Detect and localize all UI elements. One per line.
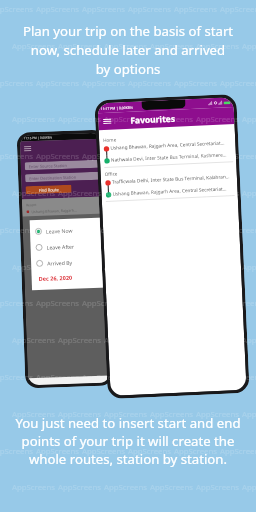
button[interactable]: Find Route xyxy=(25,185,72,194)
staticText: AppScreens xyxy=(82,78,126,89)
staticText: AppScreens xyxy=(128,151,172,162)
button[interactable]: Open navigation menu xyxy=(103,119,111,124)
staticText: AppScreens xyxy=(0,446,34,457)
staticText: AppScreens xyxy=(220,446,256,457)
staticText: Leave After xyxy=(46,243,75,251)
staticText: Enter Destination Station xyxy=(29,174,77,181)
staticText: AppScreens xyxy=(58,41,102,52)
staticText: AppScreens xyxy=(242,409,256,420)
staticText: AppScreens xyxy=(150,41,194,52)
staticText: AppScreens xyxy=(58,409,102,420)
staticText: AppScreens xyxy=(36,446,80,457)
staticText: AppScreens xyxy=(82,151,126,162)
staticText: 11:15 PM | 0.00KB/s xyxy=(24,135,53,140)
staticText: AppScreens xyxy=(220,225,256,236)
staticText: Ushang Bhawan, Rajgarh Area, Central Sec… xyxy=(110,139,224,151)
staticText: AppScreens xyxy=(104,482,148,493)
staticText: AppScreens xyxy=(12,409,56,420)
staticText: AppScreens xyxy=(36,4,80,15)
staticText: Trafficwala Delhi, Inter State Bus Termi… xyxy=(112,173,230,185)
staticText: AppScreens xyxy=(242,188,256,199)
staticText: AppScreens xyxy=(104,114,148,125)
staticText: AppScreens xyxy=(220,151,256,162)
staticText: AppScreens xyxy=(220,298,256,309)
staticText: 11:17 PM | 0.00KB/s xyxy=(101,105,134,111)
staticText: AppScreens xyxy=(12,482,56,493)
staticText: AppScreens xyxy=(82,372,126,383)
staticText: AppScreens xyxy=(0,298,34,309)
button[interactable]: Enter Source Station xyxy=(25,160,99,170)
staticText: AppScreens xyxy=(0,151,34,162)
staticText: Favourites xyxy=(130,113,175,127)
staticText: Recent xyxy=(26,203,37,207)
staticText: AppScreens xyxy=(242,335,256,346)
staticText: AppScreens xyxy=(196,41,240,52)
staticText: AppScreens xyxy=(196,114,240,125)
staticText: AppScreens xyxy=(58,262,102,273)
staticText: AppScreens xyxy=(128,446,172,457)
staticText: AppScreens xyxy=(174,78,218,89)
staticText: AppScreens xyxy=(58,114,102,125)
staticText: Dec 26, 2020 xyxy=(38,274,73,282)
staticText: AppScreens xyxy=(82,4,126,15)
staticText: AppScreens xyxy=(104,262,148,273)
staticText: AppScreens xyxy=(12,41,56,52)
staticText: AppScreens xyxy=(242,114,256,125)
staticText: AppScreens xyxy=(12,262,56,273)
staticText: AppScreens xyxy=(220,78,256,89)
staticText: AppScreens xyxy=(150,114,194,125)
staticText: AppScreens xyxy=(12,188,56,199)
button[interactable]: Arrived By xyxy=(36,258,106,267)
staticText: AppScreens xyxy=(196,409,240,420)
staticText: AppScreens xyxy=(242,262,256,273)
staticText: AppScreens xyxy=(36,151,80,162)
staticText: AppScreens xyxy=(128,78,172,89)
button[interactable]: Enter Destination Station xyxy=(25,172,99,182)
staticText: AppScreens xyxy=(36,78,80,89)
staticText: AppScreens xyxy=(128,4,172,15)
staticText: AppScreens xyxy=(36,372,80,383)
staticText: AppScreens xyxy=(0,225,34,236)
staticText: AppScreens xyxy=(58,335,102,346)
button[interactable]: Home xyxy=(99,128,236,168)
staticText: AppScreens xyxy=(174,446,218,457)
staticText: AppScreens xyxy=(104,409,148,420)
staticText: AppScreens xyxy=(150,482,194,493)
staticText: AppScreens xyxy=(58,188,102,199)
staticText: AppScreens xyxy=(150,409,194,420)
button[interactable]: Open navigation menu xyxy=(24,146,31,151)
staticText: AppScreens xyxy=(104,41,148,52)
staticText: AppScreens xyxy=(0,372,34,383)
staticText: AppScreens xyxy=(104,188,148,199)
staticText: AppScreens xyxy=(82,225,126,236)
staticText: AppScreens xyxy=(0,78,34,89)
staticText: AppScreens xyxy=(242,482,256,493)
staticText: AppScreens xyxy=(242,41,256,52)
staticText: AppScreens xyxy=(36,298,80,309)
staticText: AppScreens xyxy=(196,188,240,199)
button[interactable]: Leave Now xyxy=(35,226,105,235)
staticText: AppScreens xyxy=(36,225,80,236)
staticText: Ushang Bhawan, Rajgarh... xyxy=(31,207,77,214)
staticText: Office xyxy=(104,170,118,177)
button[interactable]: Leave After xyxy=(35,242,106,251)
button[interactable]: Office xyxy=(100,162,238,202)
staticText: AppScreens xyxy=(196,482,240,493)
staticText: AppScreens xyxy=(58,482,102,493)
staticText: AppScreens xyxy=(82,446,126,457)
staticText: Find Route xyxy=(38,187,60,193)
staticText: AppScreens xyxy=(174,4,218,15)
staticText: AppScreens xyxy=(174,151,218,162)
staticText: AppScreens xyxy=(220,4,256,15)
staticText: Nathwala Devi, Inter State Bus Terminal,… xyxy=(111,151,227,163)
staticText: AppScreens xyxy=(220,372,256,383)
staticText: AppScreens xyxy=(150,188,194,199)
